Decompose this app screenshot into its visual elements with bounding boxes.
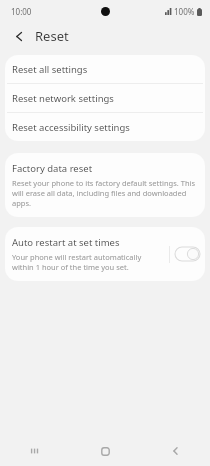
- button[interactable]: Auto restart at set times toggle: [175, 247, 200, 261]
- staticText: Reset accessibility settings: [12, 121, 130, 134]
- staticText: Reset your phone to its factory default …: [12, 178, 198, 208]
- button[interactable]: Reset all settings: [5, 55, 205, 83]
- staticText: Reset all settings: [12, 63, 88, 76]
- staticText: Auto restart at set times: [12, 236, 120, 249]
- button[interactable]: Home: [70, 436, 140, 466]
- button[interactable]: Reset network settings: [5, 84, 205, 112]
- staticText: 10:00: [11, 6, 32, 17]
- button[interactable]: Recent apps: [0, 436, 70, 466]
- staticText: Your phone will restart automatically wi…: [12, 252, 164, 272]
- button[interactable]: Reset accessibility settings: [5, 113, 205, 141]
- staticText: Reset: [35, 27, 69, 45]
- button[interactable]: Back: [10, 27, 28, 45]
- button[interactable]: Back: [140, 436, 210, 466]
- staticText: Factory data reset: [12, 162, 93, 175]
- button[interactable]: Auto restart at set times: [5, 227, 205, 281]
- staticText: 100%: [174, 6, 195, 17]
- button[interactable]: Factory data reset: [5, 153, 205, 217]
- staticText: Reset network settings: [12, 92, 114, 105]
